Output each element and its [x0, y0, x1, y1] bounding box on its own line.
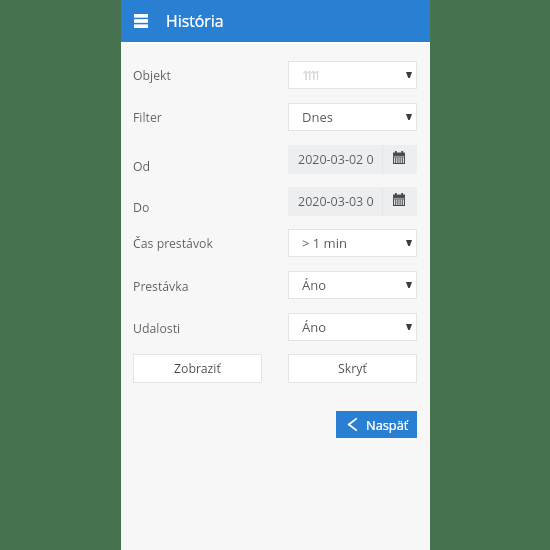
staticText: Objekt — [133, 67, 171, 84]
staticText: 1111 — [302, 66, 318, 84]
staticText: 2020-03-02 0 — [298, 151, 374, 168]
button[interactable]: Naspäť — [336, 411, 417, 438]
staticText: 2020-03-03 0 — [298, 193, 374, 210]
staticText: História — [166, 10, 224, 32]
staticText: Od — [133, 158, 151, 175]
staticText: Skryť — [338, 360, 367, 377]
button[interactable]: Zobraziť — [133, 354, 262, 383]
staticText: Zobraziť — [174, 360, 221, 377]
staticText: Udalosti — [133, 320, 181, 337]
button[interactable]: 1111 — [288, 61, 417, 89]
staticText: Naspäť — [366, 416, 409, 433]
button[interactable]: Skryť — [288, 354, 417, 383]
staticText: Čas prestávok — [133, 235, 213, 252]
staticText: Prestávka — [133, 278, 189, 295]
button[interactable]: 2020-03-03 0 — [288, 187, 417, 216]
staticText: > 1 min — [302, 234, 347, 252]
button[interactable]: > 1 min — [288, 229, 417, 257]
button[interactable]: Áno — [288, 271, 417, 299]
button[interactable]: 2020-03-02 0 — [288, 145, 417, 174]
button[interactable]: Open navigation menu — [127, 7, 155, 35]
staticText: Filter — [133, 109, 162, 126]
staticText: Áno — [302, 276, 327, 294]
staticText: Do — [133, 199, 150, 216]
button[interactable]: Dnes — [288, 103, 417, 131]
staticText: Dnes — [302, 108, 333, 126]
staticText: Áno — [302, 318, 327, 336]
button[interactable]: Áno — [288, 313, 417, 341]
